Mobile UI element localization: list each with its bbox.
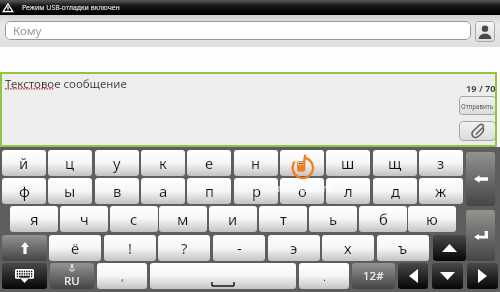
- button[interactable]: Регистр: [2, 235, 47, 261]
- button[interactable]: с: [110, 206, 158, 232]
- button[interactable]: г: [280, 150, 324, 176]
- button[interactable]: [150, 263, 296, 289]
- staticText: й: [19, 153, 29, 173]
- button[interactable]: щ: [373, 150, 417, 176]
- staticText: з: [437, 153, 445, 173]
- button[interactable]: -: [213, 235, 265, 261]
- button[interactable]: ?: [158, 235, 210, 261]
- button[interactable]: ф: [2, 178, 46, 204]
- staticText: ф: [19, 181, 30, 201]
- staticText: ь: [329, 209, 338, 229]
- button[interactable]: ь: [309, 206, 357, 232]
- staticText: 19 / 70: [466, 82, 496, 95]
- button[interactable]: ц: [48, 150, 92, 176]
- button[interactable]: б: [359, 206, 407, 232]
- staticText: щ: [388, 153, 402, 173]
- staticText: Кому: [13, 23, 42, 39]
- button[interactable]: у: [95, 150, 139, 176]
- button[interactable]: ъ: [377, 235, 429, 261]
- button[interactable]: н: [234, 150, 278, 176]
- staticText: н: [251, 153, 261, 173]
- staticText: а: [159, 181, 168, 201]
- staticText: ,: [121, 269, 124, 284]
- staticText: д: [391, 181, 400, 201]
- button[interactable]: я: [10, 206, 58, 232]
- staticText: т: [280, 209, 287, 229]
- button[interactable]: л: [326, 178, 370, 204]
- staticText: г: [299, 153, 306, 173]
- staticText: ъ: [398, 238, 408, 258]
- staticText: ц: [65, 153, 75, 173]
- button[interactable]: ч: [60, 206, 108, 232]
- staticText: -: [237, 238, 242, 258]
- staticText: э: [290, 238, 298, 258]
- button[interactable]: е: [187, 150, 231, 176]
- staticText: Текстовое сообщение: [5, 76, 127, 92]
- staticText: Отправить: [461, 102, 494, 110]
- staticText: м: [177, 209, 189, 229]
- button[interactable]: !: [104, 235, 156, 261]
- button[interactable]: э: [268, 235, 320, 261]
- button[interactable]: ,: [97, 263, 147, 289]
- button[interactable]: Язык ввода: [50, 263, 94, 289]
- button[interactable]: х: [322, 235, 374, 261]
- button[interactable]: Ввод: [466, 210, 495, 261]
- button[interactable]: м: [159, 206, 207, 232]
- staticText: 12#: [363, 268, 384, 284]
- button[interactable]: з: [419, 150, 463, 176]
- staticText: ?: [181, 238, 188, 258]
- button[interactable]: Вверх: [433, 235, 466, 261]
- button[interactable]: ы: [48, 178, 92, 204]
- button[interactable]: Скрыть клавиатуру: [2, 263, 47, 289]
- button[interactable]: о: [280, 178, 324, 204]
- button[interactable]: а: [141, 178, 185, 204]
- staticText: р: [252, 181, 261, 201]
- staticText: mobiset.ru: [277, 181, 334, 195]
- staticText: .: [323, 269, 326, 284]
- button[interactable]: Отправить: [459, 96, 496, 115]
- button[interactable]: .: [299, 263, 349, 289]
- staticText: у: [113, 153, 121, 173]
- button[interactable]: Вправо: [467, 263, 498, 289]
- button[interactable]: ё: [49, 235, 101, 261]
- button[interactable]: Влево: [398, 263, 428, 289]
- staticText: к: [159, 153, 167, 173]
- button[interactable]: Выбрать контакт: [475, 21, 495, 42]
- button[interactable]: Прикрепить файл: [459, 121, 496, 141]
- staticText: ж: [435, 181, 447, 201]
- button[interactable]: Вниз: [432, 263, 463, 289]
- button[interactable]: Кому: [5, 21, 471, 40]
- button[interactable]: р: [234, 178, 278, 204]
- button[interactable]: й: [2, 150, 46, 176]
- button[interactable]: к: [141, 150, 185, 176]
- staticText: х: [344, 238, 352, 258]
- staticText: Режим USB-отладки включен: [22, 3, 120, 12]
- staticText: п: [205, 181, 214, 201]
- staticText: RU: [64, 273, 80, 289]
- button[interactable]: п: [187, 178, 231, 204]
- staticText: ш: [341, 153, 355, 173]
- staticText: я: [30, 209, 39, 229]
- staticText: с: [130, 209, 138, 229]
- button[interactable]: т: [259, 206, 307, 232]
- button[interactable]: ж: [419, 178, 463, 204]
- staticText: ю: [426, 209, 438, 229]
- button[interactable]: Цифры и символы: [352, 263, 395, 289]
- button[interactable]: и: [209, 206, 257, 232]
- staticText: о: [298, 181, 307, 201]
- staticText: л: [344, 181, 353, 201]
- button[interactable]: в: [95, 178, 139, 204]
- button[interactable]: ю: [408, 206, 456, 232]
- button[interactable]: Удалить: [466, 152, 495, 206]
- staticText: ё: [71, 238, 80, 258]
- staticText: ы: [64, 181, 76, 201]
- staticText: !: [128, 238, 132, 258]
- staticText: в: [113, 181, 122, 201]
- staticText: и: [228, 209, 238, 229]
- button[interactable]: ш: [326, 150, 370, 176]
- staticText: б: [379, 209, 388, 229]
- staticText: ч: [80, 209, 89, 229]
- button[interactable]: д: [373, 178, 417, 204]
- staticText: е: [205, 153, 214, 173]
